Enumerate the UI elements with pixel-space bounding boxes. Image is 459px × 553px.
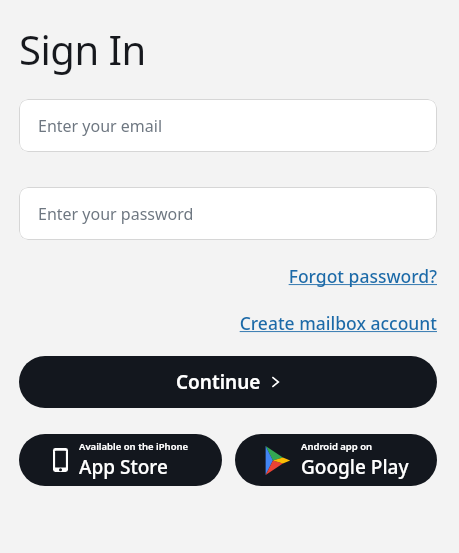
button[interactable]: Continue: [19, 356, 437, 408]
staticText: Available on the iPhone: [79, 440, 189, 453]
staticText: Enter your email: [38, 115, 163, 137]
button[interactable]: Enter your email: [19, 99, 437, 152]
staticText: Continue: [176, 369, 261, 395]
staticText: Enter your password: [38, 203, 194, 225]
button[interactable]: Forgot password?: [288, 264, 437, 288]
staticText: Google Play: [301, 454, 409, 480]
button[interactable]: Enter your password: [19, 187, 437, 240]
button[interactable]: Download on the App Store: [19, 434, 222, 486]
staticText: Sign In: [19, 22, 146, 76]
button[interactable]: Get it on Google Play: [235, 434, 437, 486]
staticText: App Store: [79, 454, 168, 480]
button[interactable]: Create mailbox account: [239, 311, 437, 335]
staticText: Android app on: [301, 440, 373, 453]
